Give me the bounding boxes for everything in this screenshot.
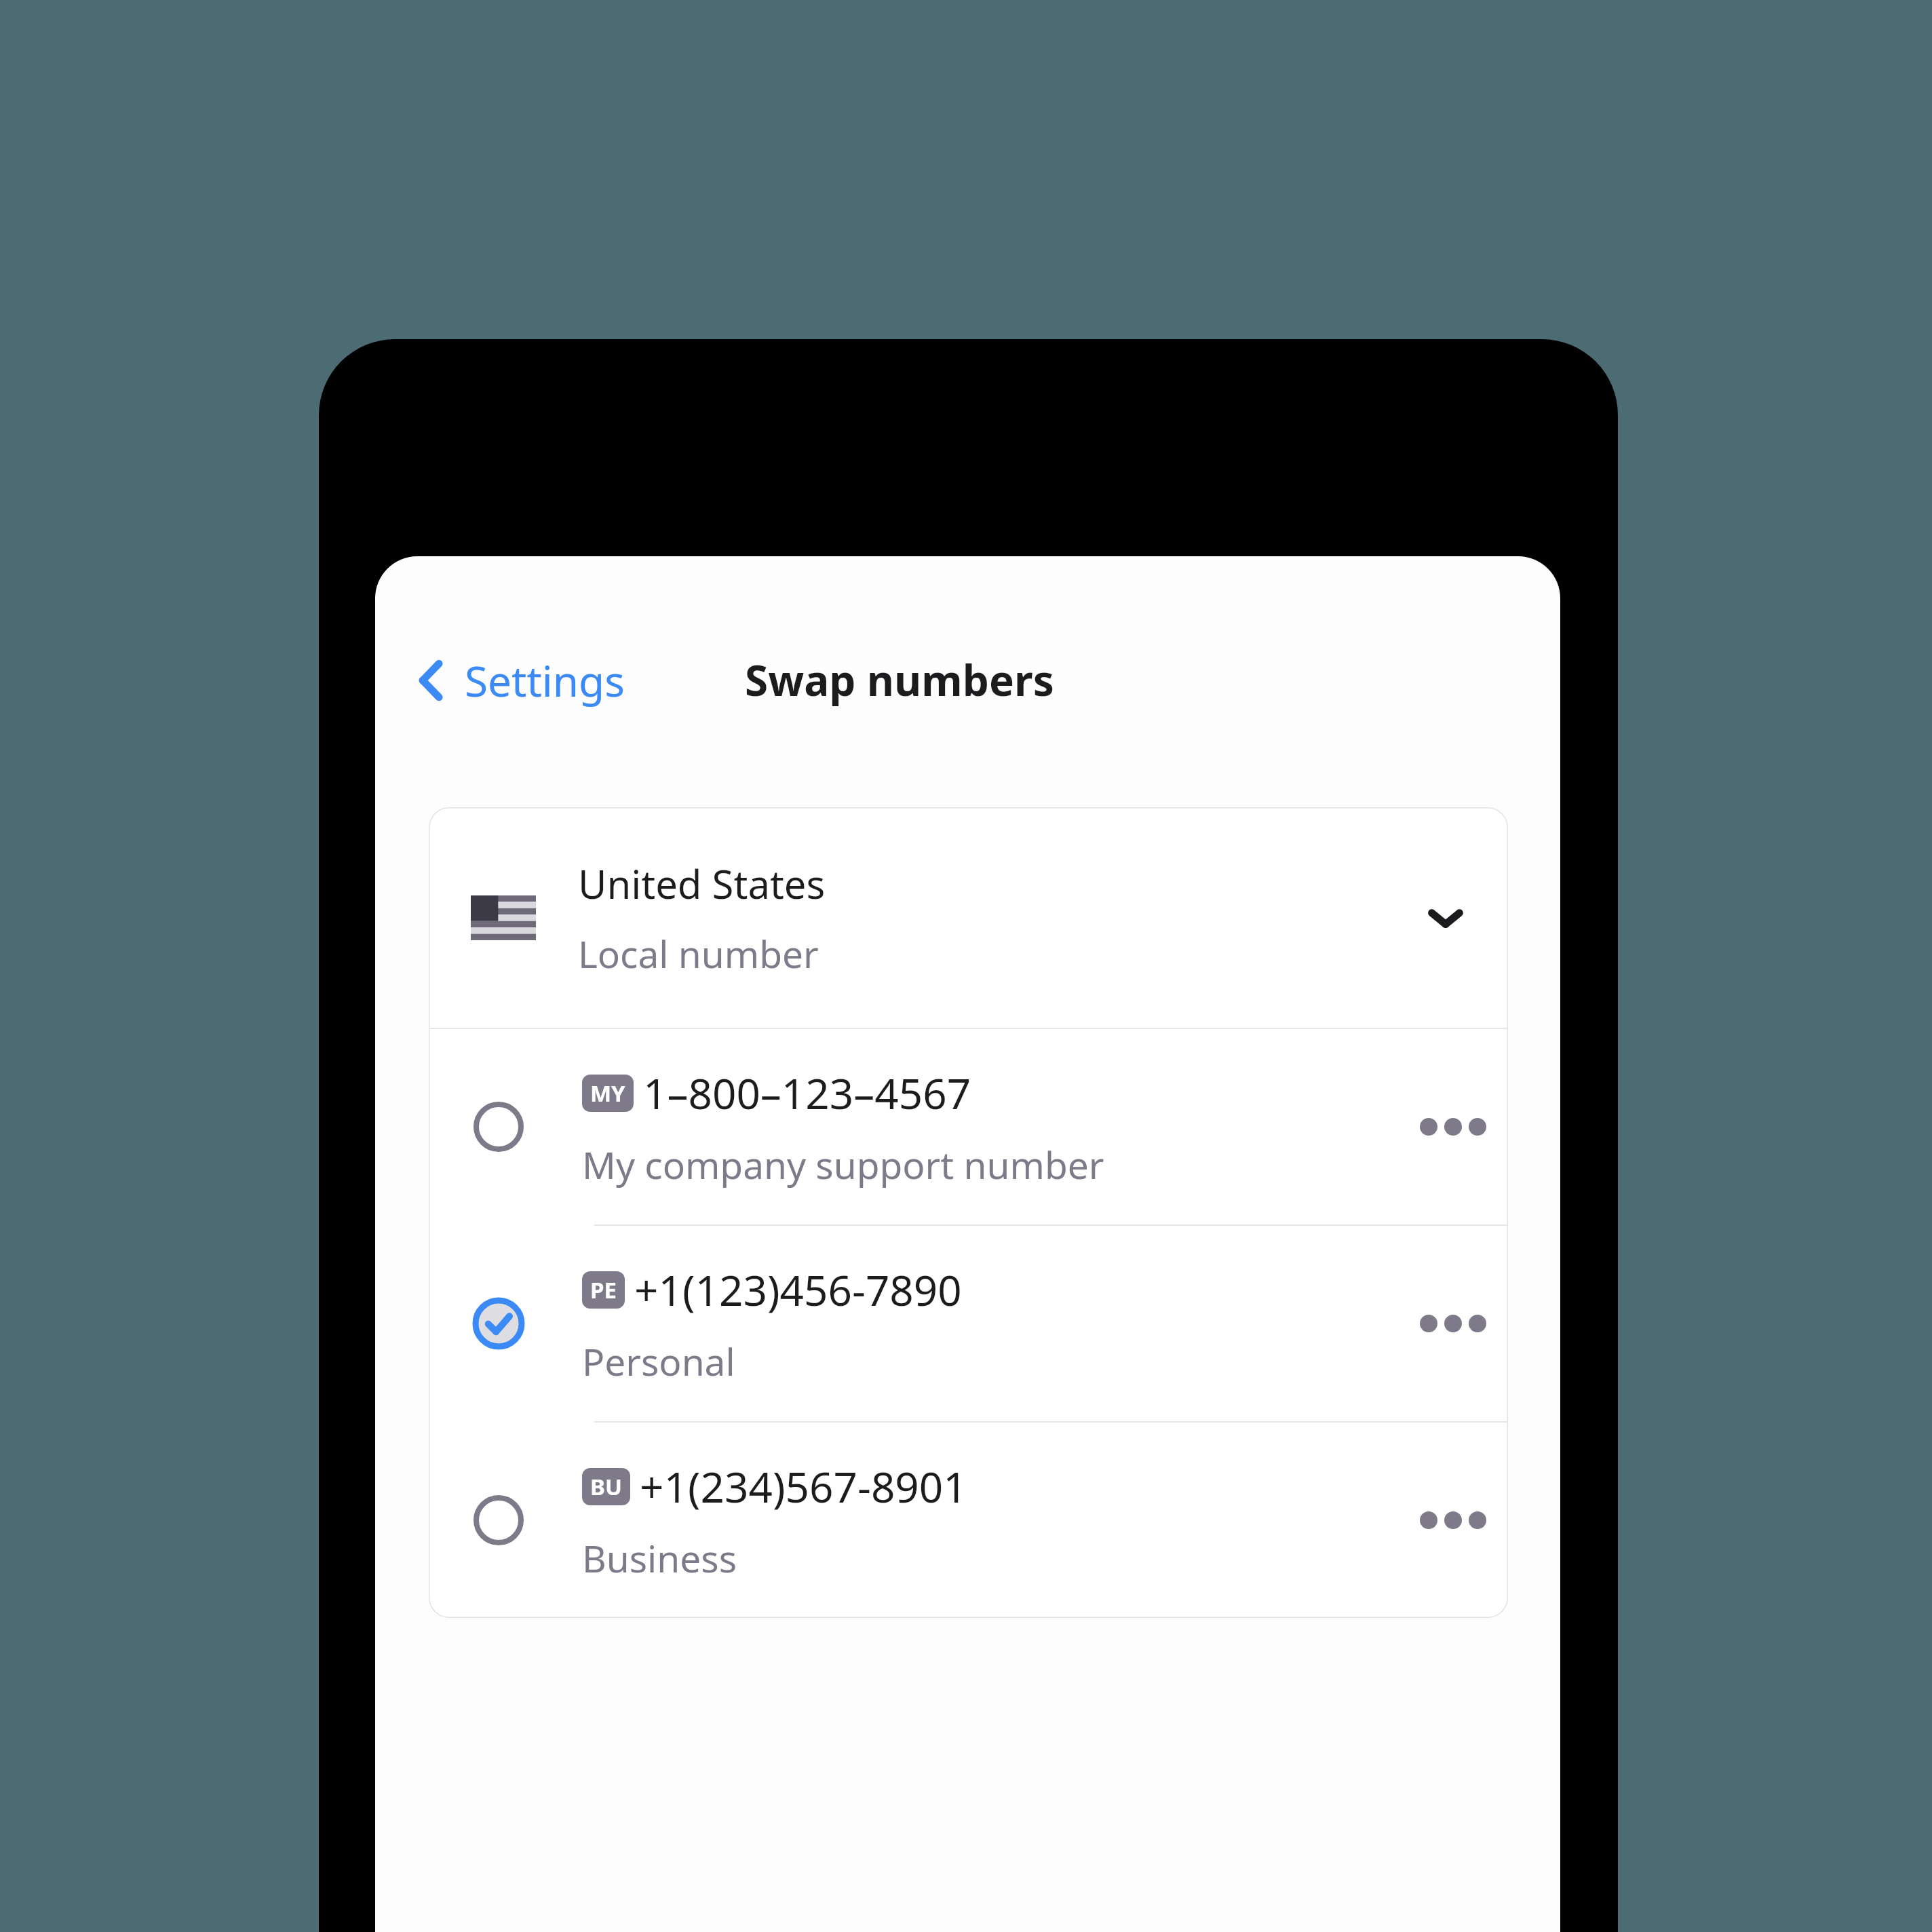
staticText: Settings xyxy=(465,652,625,709)
button[interactable]: Back xyxy=(416,636,625,724)
button[interactable]: More options xyxy=(1416,1483,1490,1558)
staticText: +1(234)567-8901 xyxy=(640,1458,967,1515)
staticText: MY xyxy=(590,1078,625,1108)
staticText: United States xyxy=(578,857,826,910)
button[interactable]: United States xyxy=(429,807,1508,1028)
button[interactable]: More options xyxy=(1416,1089,1490,1164)
other: Back xyxy=(416,659,447,701)
staticText: Swap numbers xyxy=(745,651,1054,708)
staticText: 1–800–123–4567 xyxy=(643,1064,971,1121)
staticText: PE xyxy=(590,1275,617,1305)
staticText: +1(123)456-7890 xyxy=(634,1261,962,1318)
button[interactable]: BU xyxy=(429,1423,1508,1618)
staticText: Local number xyxy=(578,928,819,979)
staticText: BU xyxy=(590,1471,622,1502)
staticText: Personal xyxy=(582,1336,735,1387)
button[interactable]: More options xyxy=(1416,1286,1490,1361)
button[interactable]: MY xyxy=(429,1029,1508,1224)
staticText: Business xyxy=(582,1532,737,1583)
button[interactable]: PE xyxy=(429,1226,1508,1421)
other: Expand xyxy=(1425,897,1466,938)
staticText: My company support number xyxy=(582,1139,1104,1190)
